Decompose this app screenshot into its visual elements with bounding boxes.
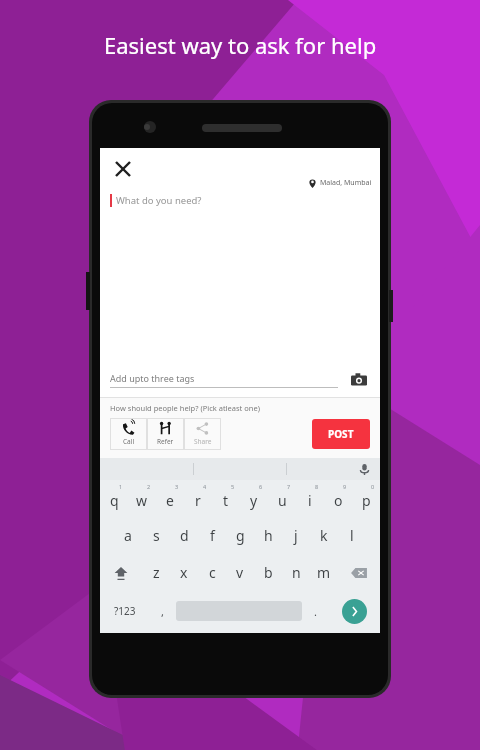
staticText: m	[317, 563, 331, 582]
staticText: b	[264, 563, 273, 582]
staticText: e	[166, 491, 174, 510]
button[interactable]: Voice input	[356, 461, 372, 477]
button[interactable]: Close	[108, 154, 138, 184]
staticText: a	[124, 526, 132, 545]
staticText: w	[136, 491, 148, 510]
button[interactable]: Share	[184, 418, 221, 450]
staticText: Easiest way to ask for help	[104, 30, 377, 60]
staticText: How should people help? (Pick atleast on…	[110, 403, 260, 413]
staticText: h	[264, 526, 273, 545]
staticText: 8	[315, 483, 319, 490]
button[interactable]: Shift	[100, 554, 142, 591]
staticText: s	[153, 526, 160, 545]
button[interactable]: l	[338, 517, 366, 554]
staticText: j	[294, 526, 298, 545]
button[interactable]: ?123	[100, 591, 149, 631]
staticText: What do you need?	[116, 194, 202, 207]
button[interactable]: 7	[268, 480, 296, 517]
button[interactable]: a	[114, 517, 142, 554]
staticText: n	[292, 563, 301, 582]
button[interactable]: b	[254, 554, 282, 591]
button[interactable]: n	[282, 554, 310, 591]
staticText: v	[236, 563, 244, 582]
button[interactable]: Add photo	[348, 369, 370, 391]
button[interactable]: .	[302, 591, 329, 631]
button[interactable]: x	[170, 554, 198, 591]
staticText: q	[110, 491, 119, 510]
button[interactable]: 8	[296, 480, 324, 517]
button[interactable]: 4	[184, 480, 212, 517]
button[interactable]: s	[142, 517, 170, 554]
staticText: Share	[194, 437, 212, 446]
button[interactable]: m	[310, 554, 338, 591]
staticText: o	[334, 491, 343, 510]
button[interactable]: 3	[156, 480, 184, 517]
staticText: d	[180, 526, 189, 545]
button[interactable]: Enter	[329, 591, 380, 631]
staticText: 6	[259, 483, 263, 490]
button[interactable]: z	[142, 554, 170, 591]
button[interactable]: g	[226, 517, 254, 554]
staticText: p	[362, 491, 371, 510]
button[interactable]: Malad, Mumbai	[308, 178, 372, 188]
staticText: u	[278, 491, 287, 510]
button[interactable]: d	[170, 517, 198, 554]
staticText: 2	[147, 483, 151, 490]
staticText: i	[308, 491, 312, 510]
button[interactable]: c	[198, 554, 226, 591]
staticText: ?123	[114, 604, 136, 618]
button[interactable]: Backspace	[338, 554, 380, 591]
staticText: k	[320, 526, 328, 545]
staticText: 1	[119, 483, 123, 490]
button[interactable]: POST	[312, 419, 370, 449]
button[interactable]: v	[226, 554, 254, 591]
staticText: x	[180, 563, 188, 582]
button[interactable]: 9	[324, 480, 352, 517]
staticText: 3	[175, 483, 179, 490]
staticText: Refer	[157, 437, 174, 446]
staticText: g	[236, 526, 245, 545]
staticText: y	[250, 491, 258, 510]
button[interactable]: 6	[240, 480, 268, 517]
button[interactable]: Refer	[147, 418, 184, 450]
staticText: 0	[371, 483, 375, 490]
button[interactable]: 0	[352, 480, 380, 517]
button[interactable]: h	[254, 517, 282, 554]
staticText: f	[210, 526, 215, 545]
staticText: Add upto three tags	[110, 372, 195, 384]
button[interactable]: Add upto three tags	[110, 372, 338, 388]
button[interactable]: k	[310, 517, 338, 554]
staticText: Malad, Mumbai	[320, 178, 372, 188]
staticText: ,	[161, 604, 164, 619]
button[interactable]: 5	[212, 480, 240, 517]
staticText: 9	[343, 483, 347, 490]
button[interactable]: j	[282, 517, 310, 554]
staticText: Call	[123, 437, 135, 446]
button[interactable]: ,	[149, 591, 176, 631]
staticText: 5	[231, 483, 235, 490]
staticText: c	[209, 563, 216, 582]
button[interactable]: 2	[128, 480, 156, 517]
staticText: 7	[287, 483, 291, 490]
staticText: POST	[328, 427, 354, 441]
staticText: t	[223, 491, 229, 510]
button[interactable]: 1	[100, 480, 128, 517]
button[interactable]: f	[198, 517, 226, 554]
staticText: z	[153, 563, 160, 582]
staticText: r	[195, 491, 201, 510]
staticText: l	[350, 526, 354, 545]
staticText: .	[314, 604, 317, 619]
staticText: 4	[203, 483, 207, 490]
button[interactable]: Call	[110, 418, 147, 450]
